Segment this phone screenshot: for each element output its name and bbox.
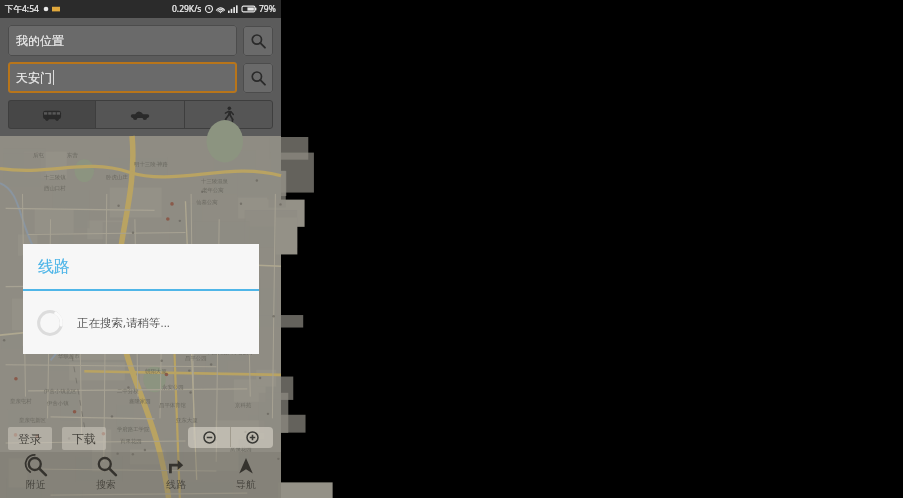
staticText: 昌平体育馆 <box>159 402 186 409</box>
staticText: 东营 <box>67 152 78 159</box>
staticText: 仙墓公寓 <box>196 199 218 206</box>
staticText: 鑫隆家园 <box>129 398 151 405</box>
staticText: 百果花园 <box>120 438 142 445</box>
staticText: 学府路工学院 <box>117 426 150 433</box>
staticText: 伊舍小镇 <box>47 400 69 407</box>
staticText: 西山口村 <box>44 185 66 192</box>
staticText: 十三陵温泉 <box>201 178 228 185</box>
staticText: 下午4:54 <box>5 3 39 15</box>
staticText: 富泉花园 <box>230 446 252 453</box>
staticText: 二中分校 <box>117 388 139 395</box>
staticText: 老年公寓 <box>202 187 224 194</box>
staticText: 搜索 <box>96 478 116 491</box>
staticText: 附近 <box>26 478 46 491</box>
button[interactable]: Mode <box>185 100 273 129</box>
staticText: 正在搜索,请稍等... <box>77 315 170 331</box>
button[interactable]: Search <box>243 26 273 56</box>
staticText: 0.29K/s <box>172 3 202 15</box>
button[interactable]: Search <box>243 63 273 93</box>
staticText: 后屯 <box>33 152 44 159</box>
staticText: 我的位置 <box>16 33 64 48</box>
staticText: 皇亲屯新区 <box>19 417 46 424</box>
button[interactable]: 我的位置 <box>8 25 237 56</box>
button[interactable]: Transit <box>8 100 95 129</box>
staticText: 永安公园 <box>162 384 184 391</box>
staticText: 伊舍小镇北区 <box>44 388 77 395</box>
staticText: 中国石油大学(北京) <box>206 348 253 355</box>
staticText: 线路 <box>38 257 70 277</box>
staticText: 导航 <box>236 478 256 491</box>
staticText: 皇亲屯村 <box>10 398 32 405</box>
staticText: 朝阳大厦 <box>145 368 167 375</box>
staticText: 昌平公园 <box>185 355 207 362</box>
button[interactable]: Mode <box>96 100 184 129</box>
staticText: 亚东大厦 <box>176 417 198 424</box>
button[interactable]: Zoom in <box>231 427 273 448</box>
button[interactable]: 搜索 <box>71 452 141 498</box>
staticText: 天安门 <box>16 70 52 85</box>
button[interactable]: 登录 <box>8 427 52 450</box>
button[interactable]: 附近 <box>0 452 71 498</box>
staticText: 卧虎山庄 <box>106 174 128 181</box>
button[interactable]: 导航 <box>211 452 281 498</box>
staticText: 华联超市 <box>58 353 80 360</box>
staticText: 79% <box>259 3 276 15</box>
button[interactable]: Zoom out <box>188 427 230 448</box>
staticText: 京科苑 <box>235 402 252 409</box>
button[interactable]: 天安门 <box>8 62 237 93</box>
button[interactable]: 线路 <box>141 452 211 498</box>
staticText: 登录 <box>18 431 42 446</box>
staticText: 下载 <box>72 431 96 446</box>
staticText: 新世纪超市 <box>38 333 65 340</box>
staticText: 十三陵镇 <box>44 174 66 181</box>
button[interactable]: 下载 <box>62 427 106 450</box>
staticText: 明十三陵·神路 <box>134 160 168 167</box>
staticText: 线路 <box>166 478 186 491</box>
